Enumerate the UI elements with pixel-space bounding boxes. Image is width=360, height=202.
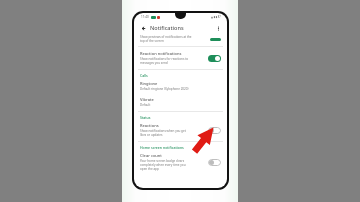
staticText: Notifications	[150, 24, 184, 31]
staticText: Default ringtone (Xylophone 2020)	[140, 87, 189, 91]
button[interactable]: Reaction notifications	[134, 49, 227, 67]
button[interactable]: Toggle on	[208, 55, 221, 62]
button[interactable]: Reactions	[134, 121, 227, 139]
button[interactable]: Ringtone	[134, 79, 227, 93]
staticText: Reactions	[140, 123, 159, 128]
staticText: Calls	[140, 73, 148, 78]
button[interactable]: Toggle off	[208, 127, 221, 134]
staticText: Home screen notifications	[140, 145, 184, 150]
button[interactable]: More options	[214, 24, 222, 32]
button[interactable]: Toggle off	[208, 159, 221, 166]
staticText: Clear count	[140, 153, 162, 158]
staticText: ▲ ▮ ▮ 87	[211, 15, 221, 19]
staticText: 11:40	[141, 15, 149, 19]
button[interactable]: Clear count	[134, 151, 227, 173]
button[interactable]: Toggle	[210, 38, 221, 41]
button[interactable]: Show previews of notifications at the to…	[134, 34, 227, 44]
staticText: Default	[140, 103, 151, 107]
staticText: Show notifications for reactions to mess…	[140, 57, 189, 65]
staticText: Ringtone	[140, 81, 158, 86]
staticText: Show previews of notifications at the to…	[140, 35, 206, 43]
staticText: Show notifications when you get likes or…	[140, 129, 186, 137]
staticText: Vibrate	[140, 97, 154, 102]
button[interactable]: Vibrate	[134, 95, 227, 109]
staticText: Status	[140, 115, 151, 120]
staticText: Your home screen badge clears completely…	[140, 159, 186, 171]
button[interactable]: Back	[139, 24, 147, 32]
staticText: Reaction notifications	[140, 51, 182, 56]
